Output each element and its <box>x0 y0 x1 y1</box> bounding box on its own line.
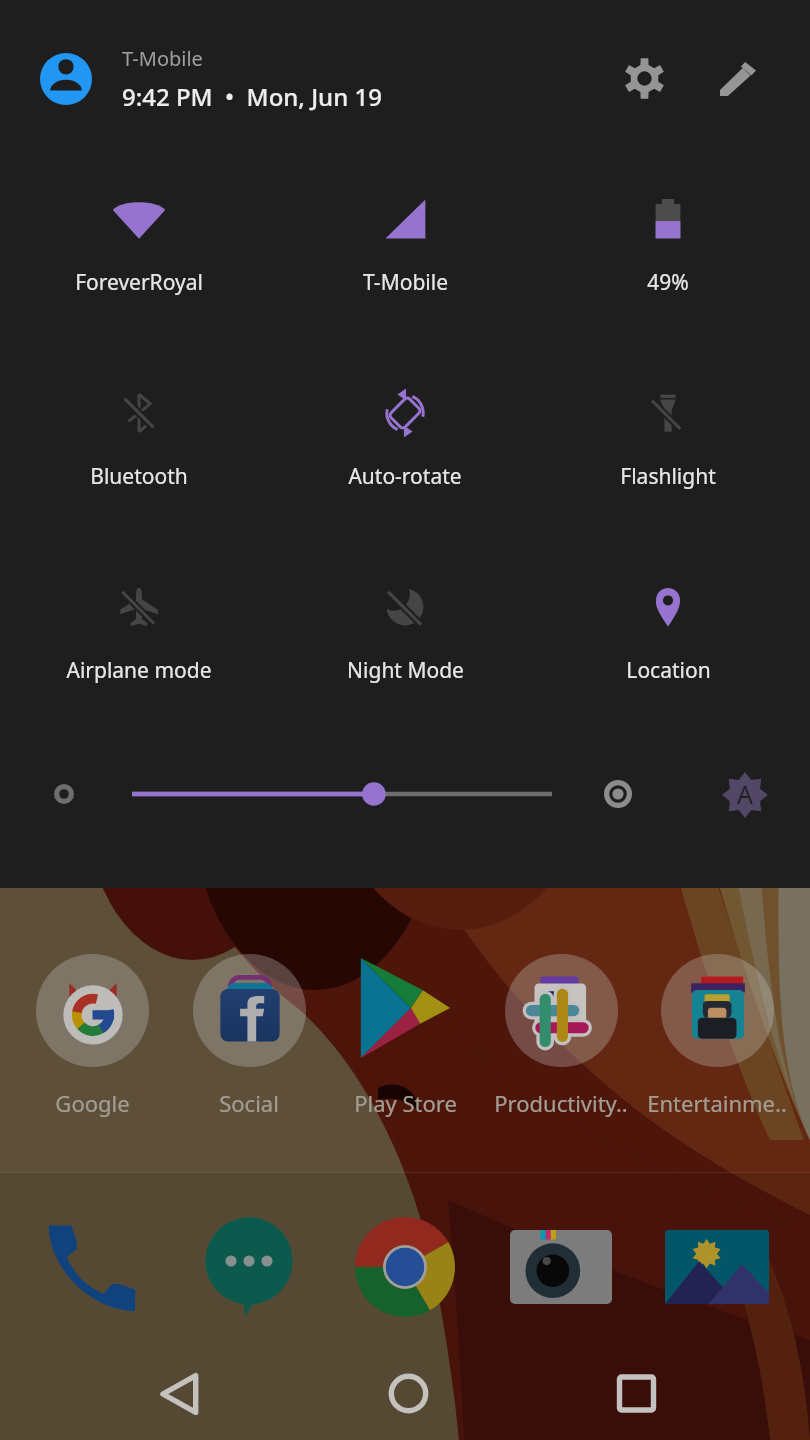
button[interactable]: Auto-rotate <box>273 360 537 548</box>
staticText: Airplane mode <box>66 656 212 685</box>
button[interactable]: Auto brightness <box>717 767 773 823</box>
staticText: Social <box>219 1088 279 1118</box>
button[interactable] <box>191 952 307 1068</box>
button[interactable]: Lower brightness <box>38 768 90 820</box>
staticText: Auto-rotate <box>348 462 462 491</box>
staticText: A <box>737 777 753 811</box>
button[interactable]: ForeverRoyal <box>7 166 271 354</box>
button[interactable]: Location <box>536 554 800 742</box>
staticText: Bluetooth <box>90 462 188 491</box>
staticText: Google <box>55 1088 130 1118</box>
button[interactable] <box>191 1209 307 1325</box>
staticText: Location <box>626 656 711 685</box>
button[interactable] <box>659 952 775 1068</box>
button[interactable] <box>503 1209 619 1325</box>
button[interactable] <box>347 1209 463 1325</box>
button[interactable] <box>34 952 150 1068</box>
button[interactable] <box>34 1209 150 1325</box>
staticText: Play Store <box>354 1088 457 1118</box>
staticText: T-Mobile <box>363 268 448 297</box>
staticText: 49% <box>647 268 689 297</box>
button[interactable]: User account <box>24 37 107 120</box>
staticText: Productivity.. <box>494 1088 628 1118</box>
button[interactable]: Bluetooth <box>7 360 271 548</box>
staticText: Entertainme.. <box>647 1088 787 1118</box>
button[interactable]: Home <box>364 1349 452 1437</box>
button[interactable] <box>659 1209 775 1325</box>
button[interactable]: Airplane mode <box>7 554 271 742</box>
button[interactable]: Recent apps <box>592 1349 680 1437</box>
button[interactable]: Edit tiles <box>702 43 774 115</box>
button[interactable]: Night Mode <box>273 554 537 742</box>
button[interactable] <box>503 952 619 1068</box>
button[interactable] <box>347 950 463 1066</box>
staticText: 9:42 PM • Mon, Jun 19 <box>122 80 382 113</box>
button[interactable]: T-Mobile <box>273 166 537 354</box>
button[interactable]: Raise brightness <box>592 768 644 820</box>
button[interactable]: Back <box>136 1349 224 1437</box>
staticText: Flashlight <box>620 462 716 491</box>
button[interactable]: 49% <box>536 166 800 354</box>
button[interactable]: Brightness slider <box>120 770 564 818</box>
staticText: T-Mobile <box>122 45 203 72</box>
staticText: ForeverRoyal <box>75 268 203 297</box>
button[interactable]: Settings <box>608 42 680 114</box>
button[interactable]: Flashlight <box>536 360 800 548</box>
staticText: Night Mode <box>347 656 464 685</box>
